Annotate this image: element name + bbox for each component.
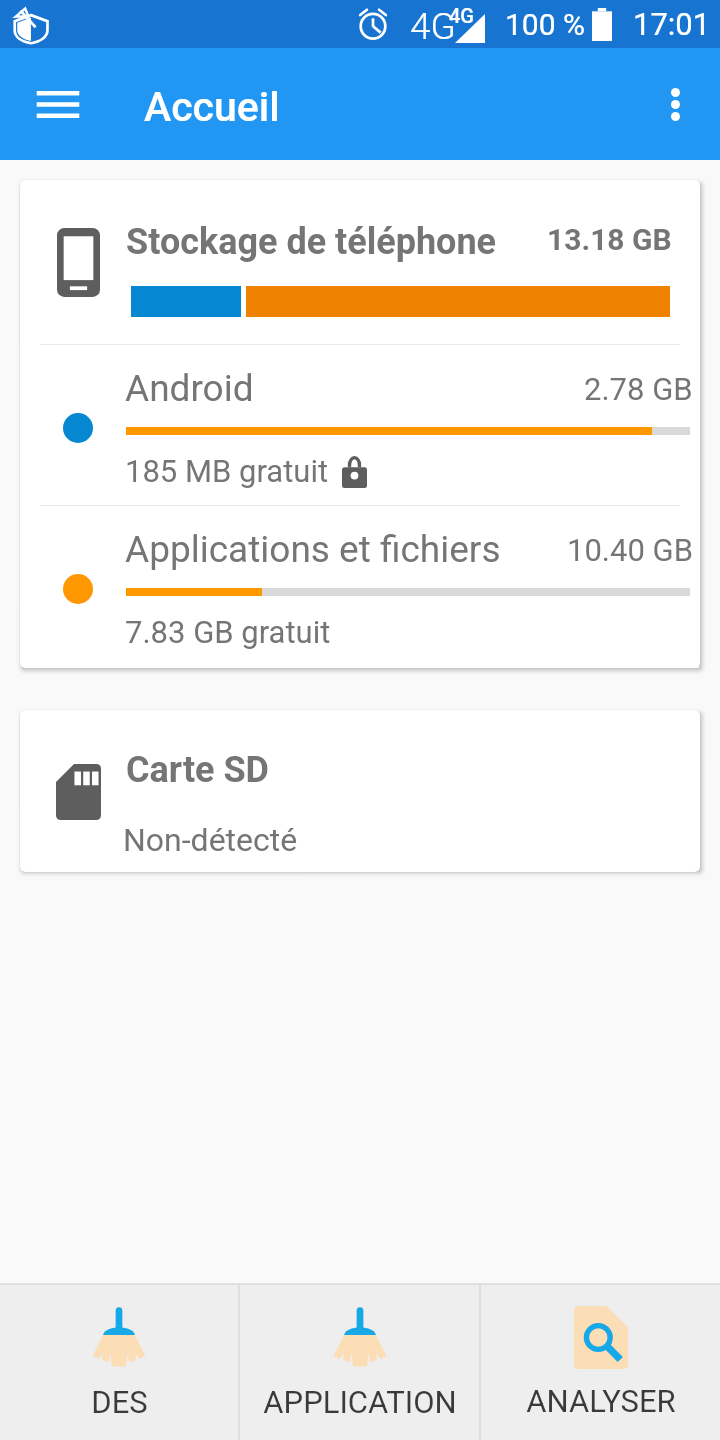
staticText: Accueil [144, 83, 280, 131]
staticText: Android [125, 367, 254, 410]
staticText: 2.78 GB [584, 371, 693, 407]
button[interactable]: Menu [23, 69, 93, 139]
staticText: Stockage de téléphone [126, 221, 497, 263]
staticText: APPLICATION [263, 1384, 457, 1420]
staticText: 17:01 [633, 6, 711, 42]
staticText: 7.83 GB gratuit [125, 614, 331, 650]
button[interactable]: ANALYSER [481, 1285, 720, 1440]
button[interactable]: More options [642, 71, 708, 137]
staticText: 10.40 GB [567, 532, 693, 568]
button[interactable]: Android [20, 345, 700, 505]
button[interactable]: DES [0, 1285, 238, 1440]
staticText: 13.18 GB [547, 222, 672, 257]
staticText: 4G [410, 5, 456, 43]
button[interactable]: Applications et fichiers [20, 506, 700, 668]
staticText: Non-détecté [123, 821, 298, 859]
staticText: DES [91, 1384, 148, 1420]
button[interactable]: Carte SD [20, 710, 700, 872]
staticText: Applications et fichiers [125, 528, 501, 571]
staticText: 185 MB gratuit [125, 453, 329, 489]
button[interactable]: Stockage de téléphone [20, 180, 700, 344]
staticText: Carte SD [126, 749, 270, 791]
staticText: ANALYSER [526, 1383, 676, 1419]
staticText: 100 % [505, 7, 585, 42]
button[interactable]: APPLICATION [240, 1285, 479, 1440]
staticText: 4G [449, 4, 474, 27]
